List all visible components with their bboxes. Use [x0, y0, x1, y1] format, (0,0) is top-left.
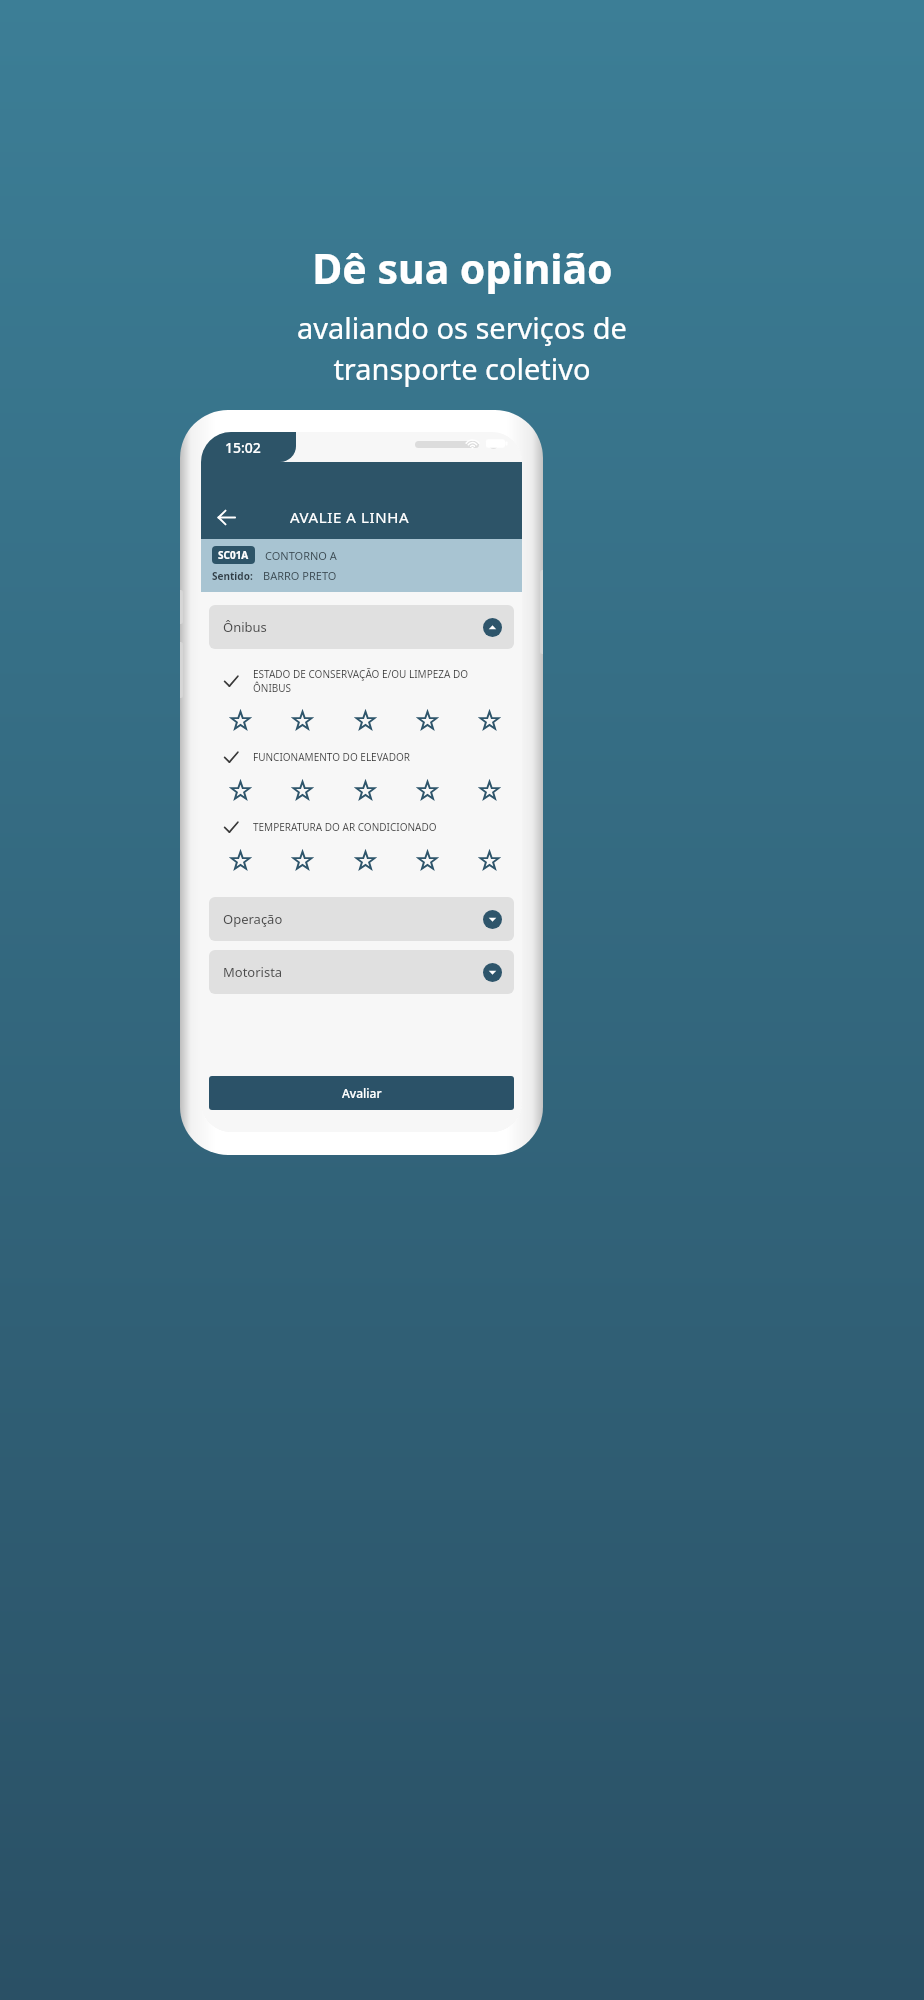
button[interactable]: Rate 3 stars — [350, 705, 380, 735]
button[interactable]: Rate 4 stars — [412, 705, 442, 735]
staticText: Ônibus — [223, 618, 267, 636]
button[interactable]: Rate 1 stars — [225, 705, 255, 735]
staticText: FUNCIONAMENTO DO ELEVADOR — [253, 750, 410, 764]
button[interactable]: Rate 5 stars — [474, 705, 504, 735]
staticText: SC01A — [218, 548, 249, 562]
button[interactable]: Rate 4 stars — [412, 775, 442, 805]
staticText: Dê sua opinião — [312, 240, 613, 296]
staticText: avaliando os serviços de transporte cole… — [297, 308, 627, 389]
button[interactable]: Avaliar — [209, 1076, 514, 1110]
staticText: 15:02 — [225, 438, 261, 457]
button[interactable]: Operação — [209, 897, 514, 941]
button[interactable]: Rate 3 stars — [350, 775, 380, 805]
staticText: TEMPERATURA DO AR CONDICIONADO — [253, 820, 437, 834]
button[interactable]: Rate 2 stars — [287, 775, 317, 805]
button[interactable]: Rate 4 stars — [412, 845, 442, 875]
staticText: Motorista — [223, 963, 283, 981]
staticText: AVALIE A LINHA — [290, 507, 410, 527]
button[interactable]: Back — [209, 500, 243, 534]
staticText: CONTORNO A — [265, 548, 337, 563]
staticText: Avaliar — [342, 1085, 382, 1101]
button[interactable]: Rate 5 stars — [474, 845, 504, 875]
button[interactable]: Rate 1 stars — [225, 775, 255, 805]
button[interactable]: Rate 5 stars — [474, 775, 504, 805]
staticText: Sentido: — [212, 569, 253, 583]
staticText: ESTADO DE CONSERVAÇÃO E/OU LIMPEZA DO ÔN… — [253, 667, 469, 695]
button[interactable]: Rate 2 stars — [287, 705, 317, 735]
button[interactable]: Ônibus — [209, 605, 514, 649]
button[interactable]: Rate 2 stars — [287, 845, 317, 875]
button[interactable]: Motorista — [209, 950, 514, 994]
button[interactable]: Rate 1 stars — [225, 845, 255, 875]
button[interactable]: Rate 3 stars — [350, 845, 380, 875]
staticText: Operação — [223, 910, 283, 928]
staticText: BARRO PRETO — [263, 568, 337, 583]
